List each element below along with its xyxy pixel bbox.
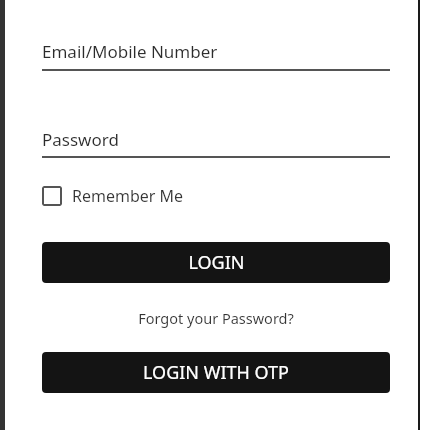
staticText: LOGIN bbox=[188, 250, 245, 275]
staticText: Remember Me bbox=[72, 185, 184, 207]
button[interactable]: Password bbox=[42, 124, 390, 160]
button[interactable]: Email/Mobile Number bbox=[42, 36, 390, 72]
button[interactable]: LOGIN WITH OTP bbox=[42, 352, 390, 393]
button[interactable]: Forgot your Password? bbox=[42, 305, 390, 331]
staticText: LOGIN WITH OTP bbox=[143, 360, 289, 385]
staticText: Forgot your Password? bbox=[138, 308, 294, 328]
staticText: Password bbox=[42, 128, 119, 151]
button[interactable]: Remember Me bbox=[42, 182, 184, 210]
button[interactable]: LOGIN bbox=[42, 242, 390, 283]
staticText: Email/Mobile Number bbox=[42, 40, 218, 63]
